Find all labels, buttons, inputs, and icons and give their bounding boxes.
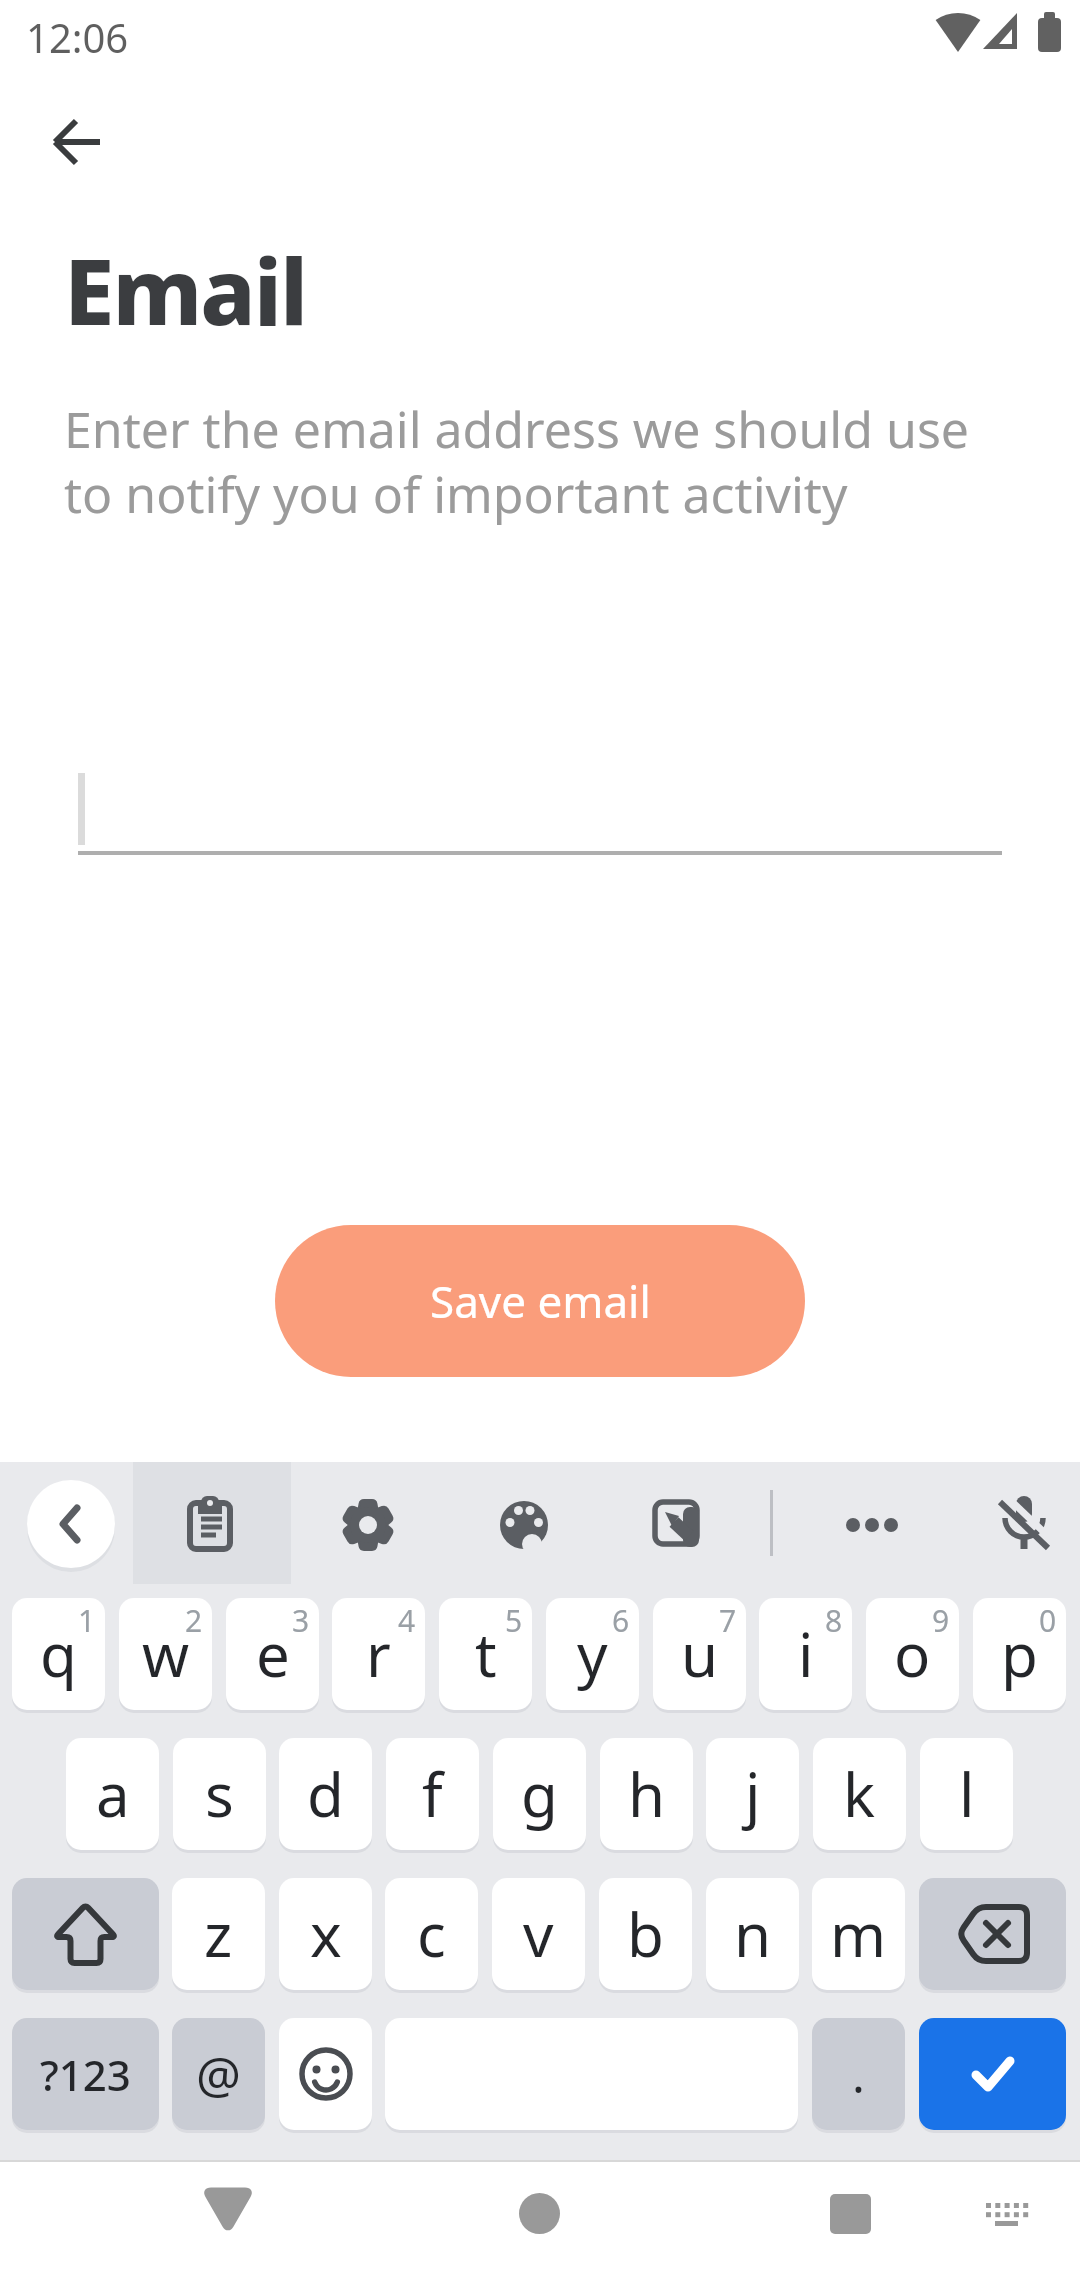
button[interactable]: @ (172, 2018, 265, 2130)
staticText: v (523, 1893, 554, 1975)
staticText: u (681, 1613, 719, 1695)
button[interactable] (279, 2018, 372, 2130)
staticText: ?123 (40, 2046, 131, 2103)
button[interactable]: w (119, 1598, 212, 1710)
button[interactable]: m (812, 1878, 905, 1990)
button[interactable]: Save email (275, 1225, 805, 1377)
staticText: p (1001, 1613, 1038, 1695)
button[interactable]: . (812, 2018, 905, 2130)
button[interactable] (844, 1497, 900, 1553)
staticText: 12:06 (26, 10, 129, 64)
button[interactable] (182, 1495, 238, 1551)
staticText: n (734, 1893, 772, 1975)
staticText: Save email (430, 1271, 651, 1331)
staticText: 1 (78, 1600, 96, 1641)
staticText: w (142, 1613, 190, 1695)
button[interactable]: r (332, 1598, 425, 1710)
staticText: f (422, 1753, 443, 1835)
button[interactable] (27, 1480, 115, 1568)
button[interactable] (50, 114, 106, 170)
staticText: 7 (719, 1600, 737, 1641)
staticText: m (830, 1893, 887, 1975)
staticText: y (577, 1613, 608, 1695)
button[interactable]: l (920, 1738, 1013, 1850)
button[interactable]: n (706, 1878, 799, 1990)
staticText: 8 (825, 1600, 843, 1641)
staticText: q (40, 1613, 77, 1695)
button[interactable]: y (546, 1598, 639, 1710)
staticText: e (256, 1613, 290, 1695)
staticText: o (894, 1613, 931, 1695)
button[interactable]: t (439, 1598, 532, 1710)
button[interactable]: k (813, 1738, 906, 1850)
button[interactable]: p (973, 1598, 1066, 1710)
staticText: l (959, 1753, 975, 1835)
button[interactable]: ?123 (12, 2018, 159, 2130)
staticText: c (417, 1893, 446, 1975)
button[interactable]: v (492, 1878, 585, 1990)
button[interactable] (649, 1495, 705, 1551)
staticText: 2 (185, 1600, 203, 1641)
staticText: t (475, 1613, 497, 1695)
button[interactable]: b (599, 1878, 692, 1990)
staticText: g (521, 1753, 558, 1835)
button[interactable]: d (279, 1738, 372, 1850)
staticText: @ (196, 2040, 241, 2108)
staticText: 5 (505, 1600, 523, 1641)
button[interactable]: z (172, 1878, 265, 1990)
button[interactable]: u (653, 1598, 746, 1710)
staticText: d (307, 1753, 344, 1835)
button[interactable]: f (386, 1738, 479, 1850)
staticText: k (843, 1753, 876, 1835)
staticText: x (310, 1893, 342, 1975)
staticText: 6 (612, 1600, 630, 1641)
staticText: 0 (1039, 1600, 1057, 1641)
button[interactable] (984, 2198, 1030, 2228)
button[interactable]: g (493, 1738, 586, 1850)
staticText: z (204, 1893, 233, 1975)
staticText: i (798, 1613, 814, 1695)
button[interactable] (12, 1878, 159, 1990)
staticText: 4 (398, 1600, 416, 1641)
staticText: 3 (292, 1600, 310, 1641)
button[interactable]: x (279, 1878, 372, 1990)
staticText: j (745, 1753, 761, 1835)
button[interactable] (340, 1497, 396, 1553)
button[interactable]: e (226, 1598, 319, 1710)
button[interactable]: i (759, 1598, 852, 1710)
staticText: . (852, 2042, 865, 2107)
button[interactable]: o (866, 1598, 959, 1710)
button[interactable] (206, 2191, 250, 2229)
button[interactable] (830, 2194, 871, 2234)
button[interactable] (496, 1497, 552, 1553)
staticText: s (205, 1753, 234, 1835)
button[interactable]: q (12, 1598, 105, 1710)
button[interactable]: s (173, 1738, 266, 1850)
button[interactable] (919, 2018, 1066, 2130)
button[interactable] (994, 1493, 1054, 1553)
staticText: Enter the email address we should use to… (64, 395, 970, 528)
button[interactable] (919, 1878, 1066, 1990)
button[interactable]: a (66, 1738, 159, 1850)
staticText: a (96, 1753, 130, 1835)
button[interactable]: c (385, 1878, 478, 1990)
button[interactable]: h (600, 1738, 693, 1850)
button[interactable] (519, 2193, 560, 2234)
staticText: b (627, 1893, 664, 1975)
staticText: h (628, 1753, 666, 1835)
staticText: r (366, 1613, 391, 1695)
staticText: 9 (932, 1600, 950, 1641)
button[interactable]: j (706, 1738, 799, 1850)
staticText: Email (64, 228, 307, 352)
